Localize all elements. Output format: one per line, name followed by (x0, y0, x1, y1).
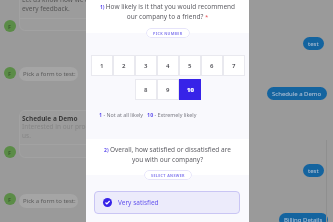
staticText: 1) How likely is it that you would recom… (97, 2, 238, 21)
button[interactable]: 9 (157, 79, 179, 100)
staticText: Let us know how we are doing, we value e… (22, 0, 145, 13)
button[interactable]: 2 (113, 55, 135, 76)
staticText: test (308, 40, 319, 48)
button[interactable]: Schedule a Demo (267, 87, 327, 100)
staticText: F (8, 149, 12, 156)
staticText: 10 (187, 86, 194, 94)
button[interactable]: test (303, 164, 324, 177)
staticText: 1 (100, 62, 104, 70)
staticText: F (8, 196, 12, 203)
button[interactable]: 10 (179, 79, 201, 100)
staticText: 9 (166, 86, 170, 94)
button[interactable]: 7 (223, 55, 245, 76)
button[interactable]: 3 (135, 55, 157, 76)
staticText: 2 (122, 62, 126, 70)
staticText: 6 (210, 62, 214, 70)
staticText: 5 (188, 62, 192, 70)
staticText: PICK NUMBER (153, 31, 183, 36)
staticText: Very satisfied (118, 198, 159, 207)
staticText: SELECT ANSWER (151, 173, 185, 178)
button[interactable]: 8 (135, 79, 157, 100)
button[interactable]: 5 (179, 55, 201, 76)
staticText: Billing Details (284, 216, 323, 222)
staticText: F (8, 70, 12, 77)
staticText: Pick a form to test: (23, 70, 76, 78)
staticText: 3 (144, 62, 148, 70)
staticText: 2) Overall, how satisfied or dissatisfie… (100, 145, 235, 164)
staticText: 7 (232, 62, 236, 70)
button[interactable]: test (303, 37, 324, 50)
staticText: 8 (144, 86, 148, 94)
button[interactable]: Very satisfied (94, 191, 240, 214)
staticText: 1 - Not at all likely 10 - Extremely lik… (99, 111, 197, 118)
button[interactable]: Billing Details (279, 213, 328, 222)
staticText: 4 (166, 62, 170, 70)
staticText: Schedule a Demo (22, 114, 78, 123)
staticText: Pick a form to test: (23, 197, 76, 205)
button[interactable]: 1 (91, 55, 113, 76)
button[interactable]: 6 (201, 55, 223, 76)
staticText: test (308, 167, 319, 175)
staticText: Schedule a Demo (272, 90, 322, 98)
staticText: Interested in our product? Talk to us. (22, 122, 124, 140)
button[interactable]: 4 (157, 55, 179, 76)
staticText: F (8, 23, 12, 30)
